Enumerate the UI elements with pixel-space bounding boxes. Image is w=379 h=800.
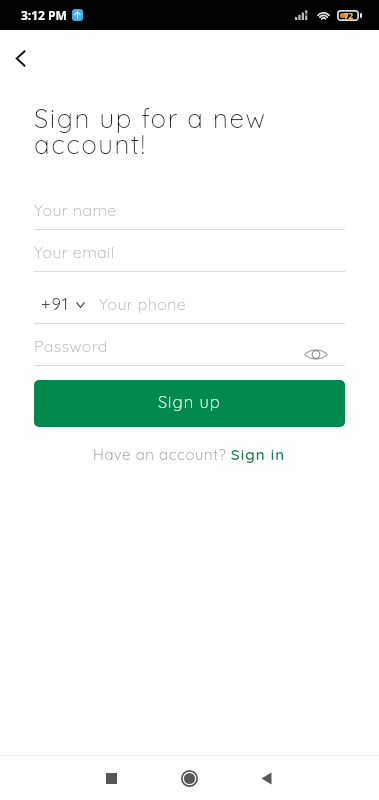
staticText: Your phone [99,294,187,314]
staticText: 72 [344,10,354,21]
button[interactable]: Your name [34,200,345,230]
button[interactable]: Show password [304,347,328,361]
staticText: Sign up [158,391,221,412]
button[interactable]: Home [167,756,211,800]
staticText: Your name [34,200,117,220]
staticText: 3:12 PM [21,7,67,23]
staticText: Sign up for a new account! [34,102,267,160]
staticText: Password [34,336,108,356]
staticText: Your email [34,242,115,262]
button[interactable]: Sign up [34,380,345,427]
button[interactable]: Recent apps [89,756,133,800]
staticText: Have an account? Sign in [93,445,286,464]
button[interactable]: Have an account? Sign in [93,445,286,464]
button[interactable]: Back [244,756,288,800]
staticText: +91 [41,293,70,314]
button[interactable]: Password [34,336,345,366]
button[interactable]: +91 [34,284,345,324]
button[interactable]: Your email [34,242,345,272]
button[interactable]: Back [2,40,38,76]
